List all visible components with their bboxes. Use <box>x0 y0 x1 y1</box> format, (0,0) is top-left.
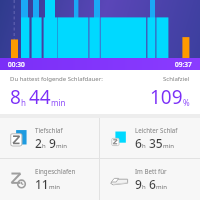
staticText: Im Bett für <box>135 167 167 175</box>
staticText: 9 <box>135 176 142 192</box>
staticText: Du hattest folgende Schlafdauer: <box>10 75 103 83</box>
other: Light sleep <box>109 128 129 148</box>
button[interactable]: Time to fall asleep <box>0 159 99 200</box>
staticText: min <box>163 142 174 150</box>
staticText: min <box>56 142 67 150</box>
staticText: 8 <box>10 84 21 110</box>
staticText: h <box>142 142 146 150</box>
staticText: 9 <box>49 135 56 151</box>
button[interactable]: Deep sleep <box>0 118 99 158</box>
staticText: min <box>51 97 66 108</box>
button[interactable]: Time in bed <box>100 159 200 200</box>
staticText: h <box>142 183 146 191</box>
staticText: Eingeschlafen <box>35 167 76 175</box>
staticText: Leichter Schlaf <box>135 126 178 134</box>
staticText: 109 <box>150 84 183 110</box>
staticText: 09:37 <box>175 60 192 69</box>
staticText: 00:30 <box>8 60 25 69</box>
staticText: 35 <box>149 135 163 151</box>
staticText: min <box>156 183 167 191</box>
staticText: h <box>21 97 26 108</box>
staticText: Tiefschlaf <box>35 126 63 134</box>
staticText: 44 <box>29 84 51 110</box>
staticText: Schlafziel <box>163 75 190 83</box>
staticText: 6 <box>149 176 156 192</box>
other: Time to fall asleep <box>9 170 29 190</box>
staticText: 11 <box>35 176 49 192</box>
staticText: % <box>183 97 190 108</box>
other: Deep sleep <box>9 128 29 148</box>
staticText: 6 <box>135 135 142 151</box>
button[interactable]: Light sleep <box>100 118 200 158</box>
button[interactable]: 00:30 <box>0 58 200 70</box>
staticText: 2 <box>35 135 42 151</box>
staticText: min <box>49 183 60 191</box>
other: Time in bed <box>109 170 129 190</box>
staticText: h <box>42 142 46 150</box>
